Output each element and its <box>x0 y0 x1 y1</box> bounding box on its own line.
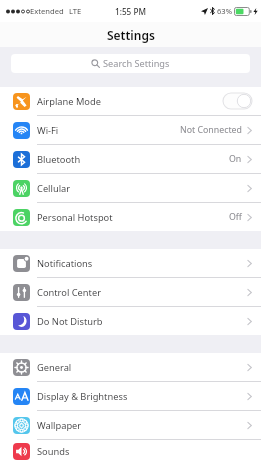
staticText: Bluetooth <box>37 153 81 166</box>
staticText: Not Connected <box>180 124 242 136</box>
button[interactable]: Wi-Fi <box>0 116 261 144</box>
button[interactable]: Search Settings <box>11 54 250 73</box>
button[interactable]: Bluetooth <box>0 145 261 173</box>
staticText: Notifications <box>37 257 93 270</box>
staticText: Wallpaper <box>37 419 82 432</box>
staticText: Search Settings <box>103 57 170 70</box>
staticText: Off <box>229 211 242 223</box>
staticText: 63% <box>217 6 232 16</box>
staticText: On <box>229 153 242 165</box>
button[interactable]: Airplane Mode toggle, off <box>223 93 252 109</box>
staticText: Personal Hotspot <box>37 211 113 224</box>
button[interactable]: Control Center <box>0 278 261 306</box>
staticText: Airplane Mode <box>37 95 101 108</box>
staticText: General <box>37 361 72 374</box>
button[interactable]: General <box>0 353 261 381</box>
staticText: Settings <box>107 27 155 43</box>
staticText: Do Not Disturb <box>37 315 103 328</box>
staticText: Display & Brightness <box>37 390 128 403</box>
staticText: Wi-Fi <box>37 124 59 137</box>
button[interactable]: Display & Brightness <box>0 382 261 410</box>
staticText: LTE <box>69 6 82 16</box>
staticText: Sounds <box>37 445 70 458</box>
button[interactable]: Notifications <box>0 249 261 277</box>
button[interactable]: Cellular <box>0 174 261 202</box>
staticText: Control Center <box>37 286 101 299</box>
staticText: Extended <box>30 6 64 16</box>
button[interactable]: Wallpaper <box>0 411 261 439</box>
staticText: 1:55 PM <box>115 6 146 17</box>
button[interactable]: Personal Hotspot <box>0 203 261 231</box>
button[interactable]: Do Not Disturb <box>0 307 261 335</box>
staticText: Cellular <box>37 182 71 195</box>
button[interactable]: Airplane Mode <box>0 87 261 115</box>
button[interactable]: Sounds <box>0 440 261 462</box>
